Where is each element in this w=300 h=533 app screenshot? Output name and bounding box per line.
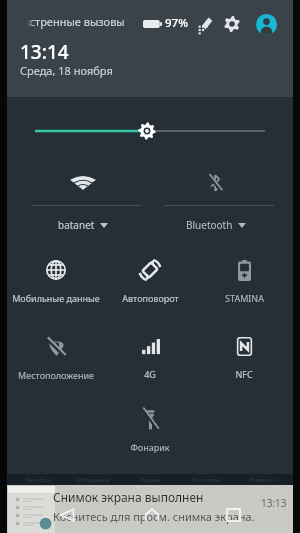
staticText: кстренные вызовы (27, 14, 125, 29)
button[interactable]: Bluetooth (149, 167, 282, 239)
staticText: Избранные (77, 476, 111, 484)
staticText: Среда, 18 ноября (20, 63, 113, 78)
staticText: Местоположение (18, 369, 94, 381)
button[interactable]: STAMINA (197, 255, 291, 323)
staticText: Автоповорот (122, 292, 179, 304)
staticText: batanet (58, 218, 95, 232)
button[interactable]: Settings (224, 16, 240, 32)
staticText: Контакты (192, 476, 220, 484)
button[interactable]: Фонарик (103, 404, 197, 472)
staticText: Телефон (26, 476, 51, 484)
other: Brightness (7, 104, 293, 158)
staticText: Снимок экрана выполнен (53, 489, 204, 505)
staticText: 4G (144, 368, 156, 380)
staticText: 13:14 (20, 39, 69, 65)
staticText: Bluetooth (186, 218, 233, 232)
staticText: Мобильные данные (12, 292, 100, 304)
staticText: Клавиат (250, 476, 274, 484)
button[interactable]: Edit quick settings (197, 16, 213, 32)
staticText: NFC (235, 368, 253, 380)
button[interactable]: Снимок экрана выполнен (7, 485, 293, 533)
staticText: 13:13 (261, 496, 287, 510)
button[interactable]: batanet (16, 167, 149, 239)
button[interactable]: NFC (197, 331, 291, 399)
staticText: Прием (140, 476, 160, 484)
button[interactable]: Местоположение (9, 332, 103, 400)
button[interactable]: 4G (103, 331, 197, 399)
button[interactable]: User account (256, 14, 277, 35)
staticText: STAMINA (225, 292, 264, 304)
staticText: 97% (165, 15, 188, 31)
staticText: Коснитесь для просм. снимка экрана. (53, 509, 255, 524)
button[interactable]: Автоповорот (103, 255, 197, 323)
staticText: Фонарик (130, 441, 170, 453)
button[interactable]: Мобильные данные (9, 255, 103, 323)
